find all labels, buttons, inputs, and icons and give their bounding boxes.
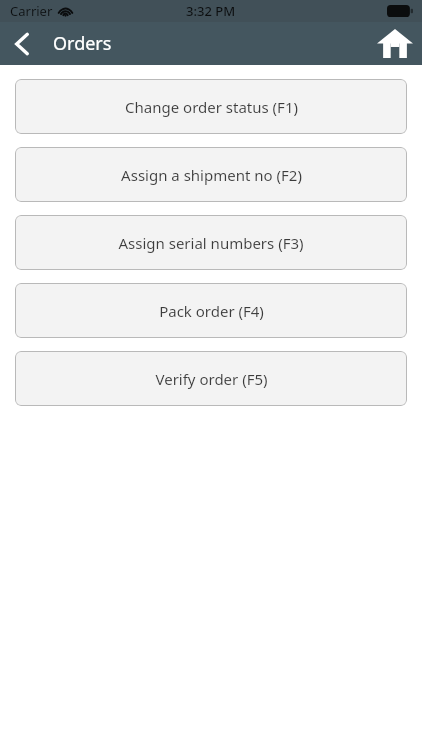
- button[interactable]: Assign a shipment no (F2): [15, 147, 407, 202]
- staticText: Assign a shipment no (F2): [121, 165, 302, 185]
- staticText: Pack order (F4): [159, 301, 264, 321]
- button[interactable]: Home: [368, 22, 422, 65]
- button[interactable]: Back: [0, 22, 44, 65]
- button[interactable]: Assign serial numbers (F3): [15, 215, 407, 270]
- staticText: 3:32 PM: [186, 2, 236, 20]
- staticText: Verify order (F5): [155, 369, 268, 389]
- staticText: Carrier: [10, 2, 53, 20]
- button[interactable]: Pack order (F4): [15, 283, 407, 338]
- staticText: Orders: [53, 31, 112, 56]
- staticText: Change order status (F1): [125, 97, 298, 117]
- button[interactable]: Verify order (F5): [15, 351, 407, 406]
- button[interactable]: Change order status (F1): [15, 79, 407, 134]
- staticText: Assign serial numbers (F3): [118, 233, 304, 253]
